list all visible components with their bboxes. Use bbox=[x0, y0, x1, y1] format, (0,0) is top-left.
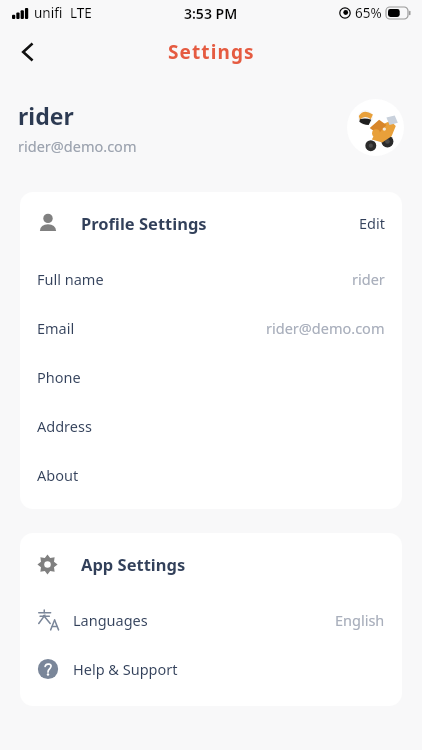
button[interactable]: Languages bbox=[20, 595, 402, 644]
staticText: Help & Support bbox=[73, 659, 178, 679]
staticText: rider bbox=[18, 100, 74, 131]
staticText: Address bbox=[37, 416, 92, 436]
staticText: Settings bbox=[168, 39, 255, 65]
button[interactable]: Profile avatar bbox=[347, 99, 404, 156]
staticText: Edit bbox=[359, 213, 385, 233]
staticText: About bbox=[37, 465, 79, 485]
staticText: 65% bbox=[355, 4, 382, 22]
staticText: rider@demo.com bbox=[266, 318, 385, 338]
staticText: Profile Settings bbox=[81, 212, 207, 234]
staticText: rider bbox=[352, 269, 385, 289]
button[interactable]: Back bbox=[6, 30, 50, 74]
button[interactable]: About bbox=[20, 450, 402, 499]
staticText: rider@demo.com bbox=[18, 136, 137, 156]
button[interactable]: Phone bbox=[20, 352, 402, 401]
button[interactable]: Profile Settings bbox=[20, 192, 402, 254]
button[interactable]: Full name bbox=[20, 254, 402, 303]
staticText: Languages bbox=[73, 610, 148, 630]
button[interactable]: App Settings bbox=[20, 533, 402, 595]
button[interactable]: Email bbox=[20, 303, 402, 352]
staticText: 3:53 PM bbox=[184, 4, 238, 23]
staticText: Phone bbox=[37, 367, 81, 387]
staticText: Email bbox=[37, 318, 75, 338]
button[interactable]: Help & Support bbox=[20, 644, 402, 693]
staticText: LTE bbox=[70, 4, 92, 22]
button[interactable]: Address bbox=[20, 401, 402, 450]
staticText: unifi bbox=[34, 4, 63, 22]
staticText: App Settings bbox=[81, 553, 186, 575]
staticText: Full name bbox=[37, 269, 104, 289]
staticText: English bbox=[335, 610, 385, 630]
